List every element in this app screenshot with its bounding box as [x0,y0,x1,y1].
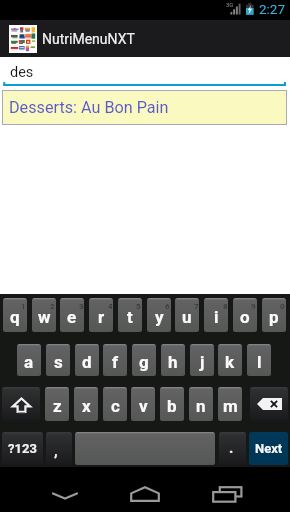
staticText: 3G [226,1,234,8]
staticText: e [67,307,77,327]
staticText: 5 [136,302,141,311]
button[interactable]: b [160,387,184,421]
staticText: 3 [79,302,84,311]
staticText: Desserts: Au Bon Pain [9,98,169,117]
staticText: Next [255,441,283,456]
button[interactable]: a [17,344,41,376]
staticText: d [82,352,92,372]
button[interactable]: h [161,344,185,376]
button[interactable]: x [74,387,98,421]
button[interactable]: k [218,344,242,376]
button[interactable]: r [89,298,113,332]
button[interactable]: Backspace [250,387,288,421]
button[interactable]: , [46,432,72,465]
button[interactable]: Desserts: Au Bon Pain [3,91,286,124]
button[interactable]: z [45,387,69,421]
staticText: 2:27 [259,1,286,17]
button[interactable]: Hide keyboard [40,480,90,512]
button[interactable]: c [103,387,127,421]
staticText: l [257,352,262,372]
staticText: h [168,352,178,372]
button[interactable]: w [32,298,56,332]
button[interactable]: Shift [2,387,40,421]
button[interactable]: u [175,298,199,332]
button[interactable]: j [190,344,214,376]
staticText: j [200,352,205,372]
staticText: 9 [251,302,256,311]
staticText: 4 [108,302,113,311]
staticText: NutriMenuNXT [42,31,135,47]
button[interactable]: p [262,298,286,332]
staticText: 1 [21,302,26,311]
button[interactable]: . [219,432,246,465]
button[interactable]: e [60,298,84,332]
staticText: 7 [194,302,199,311]
staticText: u [182,307,192,327]
button[interactable]: g [132,344,156,376]
staticText: r [98,307,105,327]
staticText: g [139,352,149,372]
button[interactable]: d [75,344,99,376]
button[interactable]: v [131,387,155,421]
staticText: x [82,396,91,416]
staticText: a [24,352,34,372]
staticText: p [269,307,279,327]
button[interactable]: t [118,298,142,332]
staticText: q [10,307,20,327]
button[interactable]: i [204,298,228,332]
button[interactable]: l [247,344,271,376]
staticText: z [53,396,62,416]
button[interactable]: n [189,387,213,421]
staticText: 8 [223,302,228,311]
staticText: o [240,307,250,327]
staticText: v [139,396,148,416]
staticText: . [229,439,234,457]
button[interactable]: Next [249,432,288,465]
staticText: 6 [165,302,170,311]
staticText: des [10,64,34,81]
button[interactable]: Space [75,432,215,465]
staticText: b [167,396,177,416]
button[interactable]: f [103,344,127,376]
button[interactable]: q [3,298,27,332]
staticText: w [38,307,51,327]
staticText: m [223,396,238,416]
staticText: n [196,396,206,416]
button[interactable]: m [218,387,242,421]
staticText: i [214,307,219,327]
button[interactable]: o [233,298,257,332]
button[interactable]: s [46,344,70,376]
staticText: , [54,442,58,460]
staticText: k [225,352,235,372]
staticText: 2 [50,302,55,311]
staticText: y [155,307,164,327]
button[interactable]: y [147,298,171,332]
button[interactable]: Home [120,478,170,510]
button[interactable]: ?123 [2,432,43,465]
button[interactable]: Recents [202,478,252,510]
staticText: ?123 [8,441,37,456]
staticText: t [127,307,133,327]
staticText: f [112,352,119,372]
staticText: s [54,352,63,372]
staticText: 0 [280,302,285,311]
staticText: c [111,396,120,416]
